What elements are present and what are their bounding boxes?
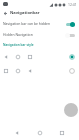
button[interactable] [0, 64, 79, 78]
staticText: Navigationbar [10, 10, 40, 16]
staticText: Navigation bar can be hidden [3, 21, 65, 26]
button[interactable]: Back [0, 8, 10, 18]
button[interactable]: Back [12, 128, 22, 138]
button[interactable]: Hidden Navigation [0, 29, 79, 40]
button[interactable]: Scroll [64, 103, 78, 117]
staticText: Hidden Navigation [3, 32, 65, 37]
staticText: Navigation bar style [3, 43, 34, 47]
button[interactable]: Navigation bar can be hidden [0, 18, 79, 29]
button[interactable]: Home [35, 128, 45, 138]
button[interactable] [0, 50, 79, 64]
button[interactable]: Recents [57, 128, 67, 138]
staticText: 12:41 [68, 2, 77, 7]
